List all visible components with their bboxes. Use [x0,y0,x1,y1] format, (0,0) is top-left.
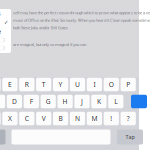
staticText: muse of Office on the iPad. Seriously. W… [13,17,150,23]
button[interactable]: D [7,95,22,108]
button[interactable] [0,18,10,27]
button[interactable]: Y [53,78,68,91]
button[interactable]: I [87,78,102,91]
staticText: V [42,114,46,123]
staticText: E [8,80,12,89]
staticText: ✓ [4,19,8,26]
staticText: I [93,80,95,89]
staticText: X [8,114,12,123]
staticText: self may have the perfect reason through… [13,10,150,15]
button[interactable]: 123 [0,129,5,144]
button[interactable]: N [70,112,85,125]
button[interactable]: Tap [117,129,143,144]
button[interactable]: U [70,78,85,91]
staticText: M [91,114,97,123]
staticText: C [25,114,29,123]
staticText: N [75,114,80,123]
button[interactable]: Replace [0,27,11,36]
button[interactable] [131,95,147,108]
staticText: ? [127,114,130,123]
staticText: J [81,97,83,106]
button[interactable]: F [24,95,39,108]
button[interactable]: C [19,112,34,125]
button[interactable]: G [41,95,56,108]
staticText: Tap [125,133,134,141]
button[interactable]: J [74,95,90,108]
staticText: are magical, but only so magical if you … [13,42,86,47]
button[interactable]: L [108,95,123,108]
staticText: both Steve Jobs and/or Bill Gates [13,25,68,30]
staticText: Options [0,10,1,17]
button[interactable]: W [0,78,1,91]
staticText: ! [110,114,112,123]
staticText: G [46,97,51,106]
staticText: U [75,80,80,89]
button[interactable]: E [2,78,17,91]
button[interactable]: H [57,95,73,108]
staticText: T [42,80,46,89]
button[interactable]: R [19,78,34,91]
button[interactable]: O [104,78,119,91]
button[interactable]: M [87,112,102,125]
button[interactable]: ? [121,112,136,125]
staticText: Y [59,80,63,89]
staticText: H [63,97,68,106]
button[interactable]: V [36,112,51,125]
staticText: K [97,97,101,106]
button[interactable]: K [91,95,106,108]
staticText: Replace [0,28,1,35]
staticText: L [114,97,117,106]
button[interactable]: ! [104,112,119,125]
button[interactable]: P [121,78,136,91]
button[interactable]: Options [0,9,11,18]
button[interactable]: B [53,112,68,125]
staticText: O [109,80,114,89]
staticText: R [25,80,29,89]
button[interactable]: X [2,112,17,125]
staticText: D [12,97,17,106]
staticText: B [59,114,63,123]
button[interactable]: Z [0,112,1,125]
staticText: P [126,80,130,89]
button[interactable]: T [36,78,51,91]
staticText: F [30,97,33,106]
